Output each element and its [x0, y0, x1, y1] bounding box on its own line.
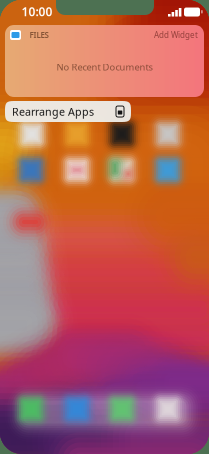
- staticText: FILES: [29, 30, 48, 40]
- staticText: No Recent Documents: [56, 61, 152, 73]
- staticText: 10:00: [21, 3, 52, 19]
- staticText: Rearrange Apps: [12, 104, 94, 119]
- button[interactable]: FILES: [5, 25, 204, 97]
- staticText: Add Widget: [154, 30, 198, 40]
- button[interactable]: Rearrange Apps: [5, 101, 131, 122]
